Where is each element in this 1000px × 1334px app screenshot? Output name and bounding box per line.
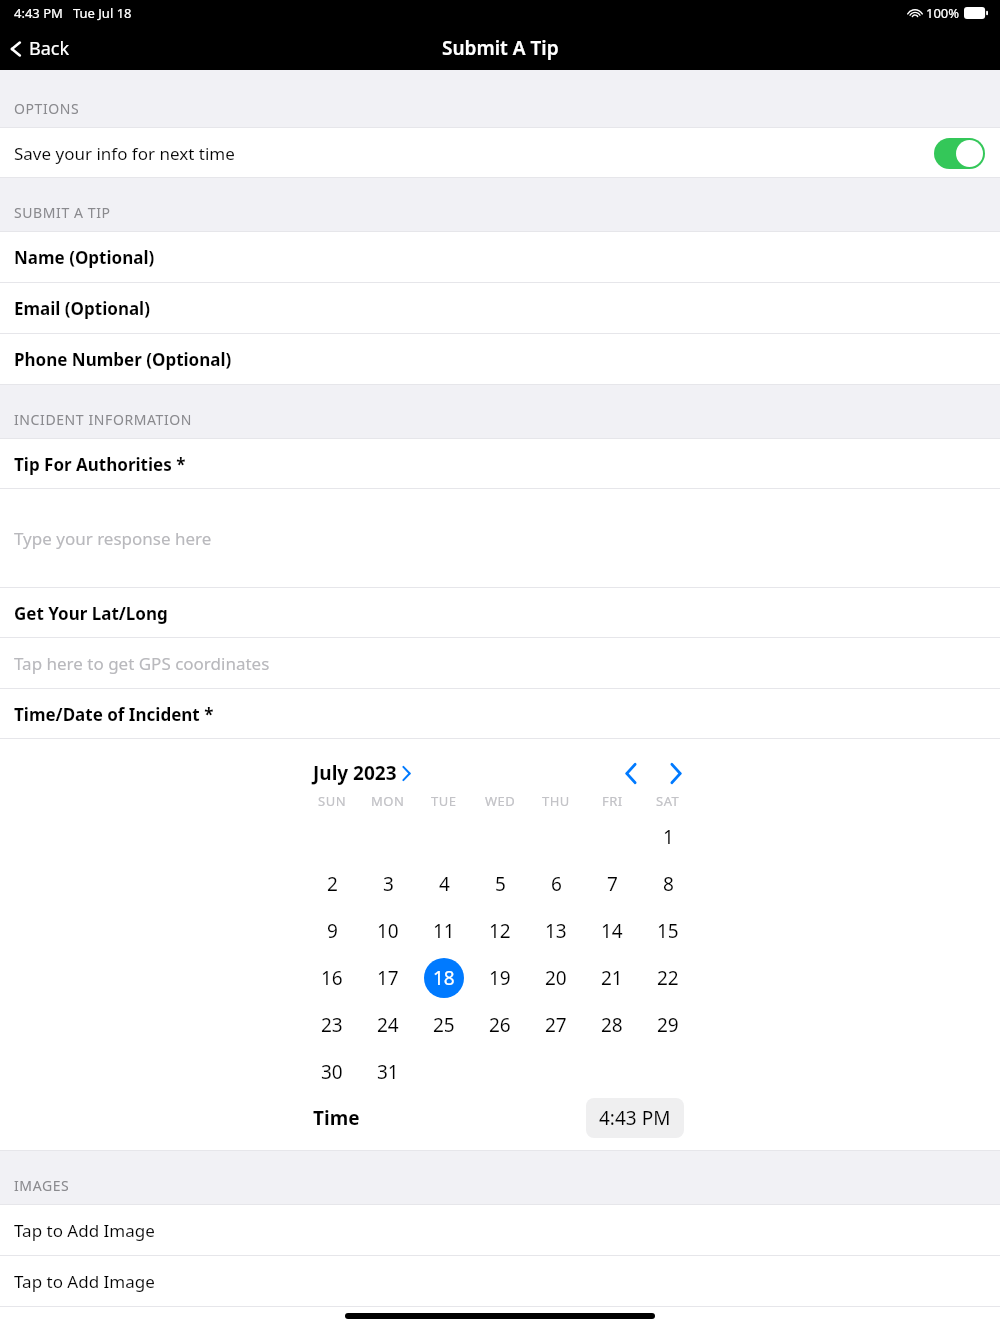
staticText: Get Your Lat/Long [14, 602, 168, 625]
staticText: Tap to Add Image [14, 1219, 155, 1242]
staticText: 5 [495, 871, 506, 897]
staticText: Time/Date of Incident * [14, 703, 214, 726]
staticText: Name (Optional) [14, 246, 155, 269]
staticText: 27 [545, 1012, 567, 1038]
staticText: Tap here to get GPS coordinates [14, 652, 270, 675]
staticText: 25 [433, 1012, 455, 1038]
button[interactable]: 19 [480, 958, 520, 998]
staticText: FRI [602, 792, 623, 810]
staticText: INCIDENT INFORMATION [14, 410, 193, 429]
button[interactable]: 2 [312, 864, 352, 904]
button[interactable]: 11 [424, 911, 464, 951]
button[interactable]: 4:43 PM [586, 1098, 684, 1138]
staticText: MON [371, 792, 405, 810]
staticText: Time [313, 1105, 360, 1131]
button[interactable]: 22 [648, 958, 688, 998]
button[interactable]: Name (Optional) [0, 232, 1000, 283]
other: Save your info toggle, on [934, 138, 985, 169]
staticText: SUBMIT A TIP [14, 203, 111, 222]
button[interactable]: Tap to Add Image [0, 1256, 1000, 1307]
button[interactable]: 15 [648, 911, 688, 951]
staticText: Tue Jul 18 [73, 4, 132, 22]
button[interactable]: 24 [368, 1005, 408, 1045]
staticText: Email (Optional) [14, 297, 150, 320]
staticText: 2 [327, 871, 338, 897]
staticText: 22 [657, 965, 679, 991]
button[interactable]: Tap to Add Image [0, 1205, 1000, 1256]
button[interactable]: 9 [312, 911, 352, 951]
button[interactable]: 30 [312, 1052, 352, 1092]
button[interactable]: Save your info for next time [0, 128, 1000, 178]
button[interactable]: 12 [480, 911, 520, 951]
button[interactable]: 20 [536, 958, 576, 998]
staticText: 7 [607, 871, 618, 897]
button[interactable]: 29 [648, 1005, 688, 1045]
staticText: Save your info for next time [14, 142, 235, 165]
staticText: 9 [327, 918, 338, 944]
staticText: SUN [318, 792, 347, 810]
button[interactable]: 10 [368, 911, 408, 951]
staticText: 6 [551, 871, 562, 897]
button[interactable]: 5 [480, 864, 520, 904]
button[interactable]: Tap here to get GPS coordinates [0, 638, 1000, 689]
button[interactable]: 27 [536, 1005, 576, 1045]
button[interactable]: 7 [592, 864, 632, 904]
staticText: 16 [321, 965, 343, 991]
staticText: 10 [377, 918, 399, 944]
staticText: Submit A Tip [442, 35, 559, 61]
button[interactable]: 25 [424, 1005, 464, 1045]
staticText: 31 [377, 1059, 399, 1085]
button[interactable]: Time/Date of Incident * [0, 689, 1000, 739]
staticText: Type your response here [14, 527, 212, 550]
button[interactable]: Previous month [611, 753, 651, 793]
button[interactable]: 28 [592, 1005, 632, 1045]
button[interactable]: 13 [536, 911, 576, 951]
button[interactable]: Back [0, 30, 84, 67]
staticText: TUE [431, 792, 457, 810]
staticText: 4:43 PM [14, 4, 63, 22]
button[interactable]: Get Your Lat/Long [0, 588, 1000, 638]
button[interactable]: Phone Number (Optional) [0, 334, 1000, 385]
staticText: Tap to Add Image [14, 1270, 155, 1293]
staticText: 24 [377, 1012, 399, 1038]
staticText: 30 [321, 1059, 343, 1085]
staticText: Back [29, 36, 70, 61]
button[interactable]: Next month [656, 753, 696, 793]
staticText: IMAGES [14, 1176, 70, 1195]
staticText: July 2023 [313, 760, 397, 786]
button[interactable]: 26 [480, 1005, 520, 1045]
staticText: 19 [489, 965, 511, 991]
button[interactable]: 16 [312, 958, 352, 998]
staticText: 12 [489, 918, 511, 944]
staticText: 4:43 PM [599, 1105, 671, 1131]
button[interactable]: 17 [368, 958, 408, 998]
button[interactable]: 3 [368, 864, 408, 904]
staticText: 13 [545, 918, 567, 944]
staticText: 1 [663, 824, 674, 850]
staticText: THU [542, 792, 570, 810]
staticText: 20 [545, 965, 567, 991]
staticText: 100% [926, 4, 960, 22]
staticText: 21 [601, 965, 623, 991]
button[interactable]: 14 [592, 911, 632, 951]
staticText: 18 [433, 965, 455, 991]
button[interactable]: 6 [536, 864, 576, 904]
button[interactable]: July 2023 [313, 756, 411, 790]
staticText: 23 [321, 1012, 343, 1038]
button[interactable]: Email (Optional) [0, 283, 1000, 334]
button[interactable]: 4 [424, 864, 464, 904]
staticText: 14 [601, 918, 623, 944]
staticText: Tip For Authorities * [14, 453, 186, 476]
button[interactable]: Type your response here [0, 489, 1000, 588]
button[interactable]: 31 [368, 1052, 408, 1092]
button[interactable]: 8 [648, 864, 688, 904]
button[interactable]: 21 [592, 958, 632, 998]
button[interactable]: 23 [312, 1005, 352, 1045]
staticText: Phone Number (Optional) [14, 348, 232, 371]
button[interactable]: 1 [648, 817, 688, 857]
staticText: 29 [657, 1012, 679, 1038]
staticText: 15 [657, 918, 679, 944]
button[interactable]: 18 [424, 958, 464, 998]
staticText: 11 [433, 918, 455, 944]
button[interactable]: Tip For Authorities * [0, 439, 1000, 489]
